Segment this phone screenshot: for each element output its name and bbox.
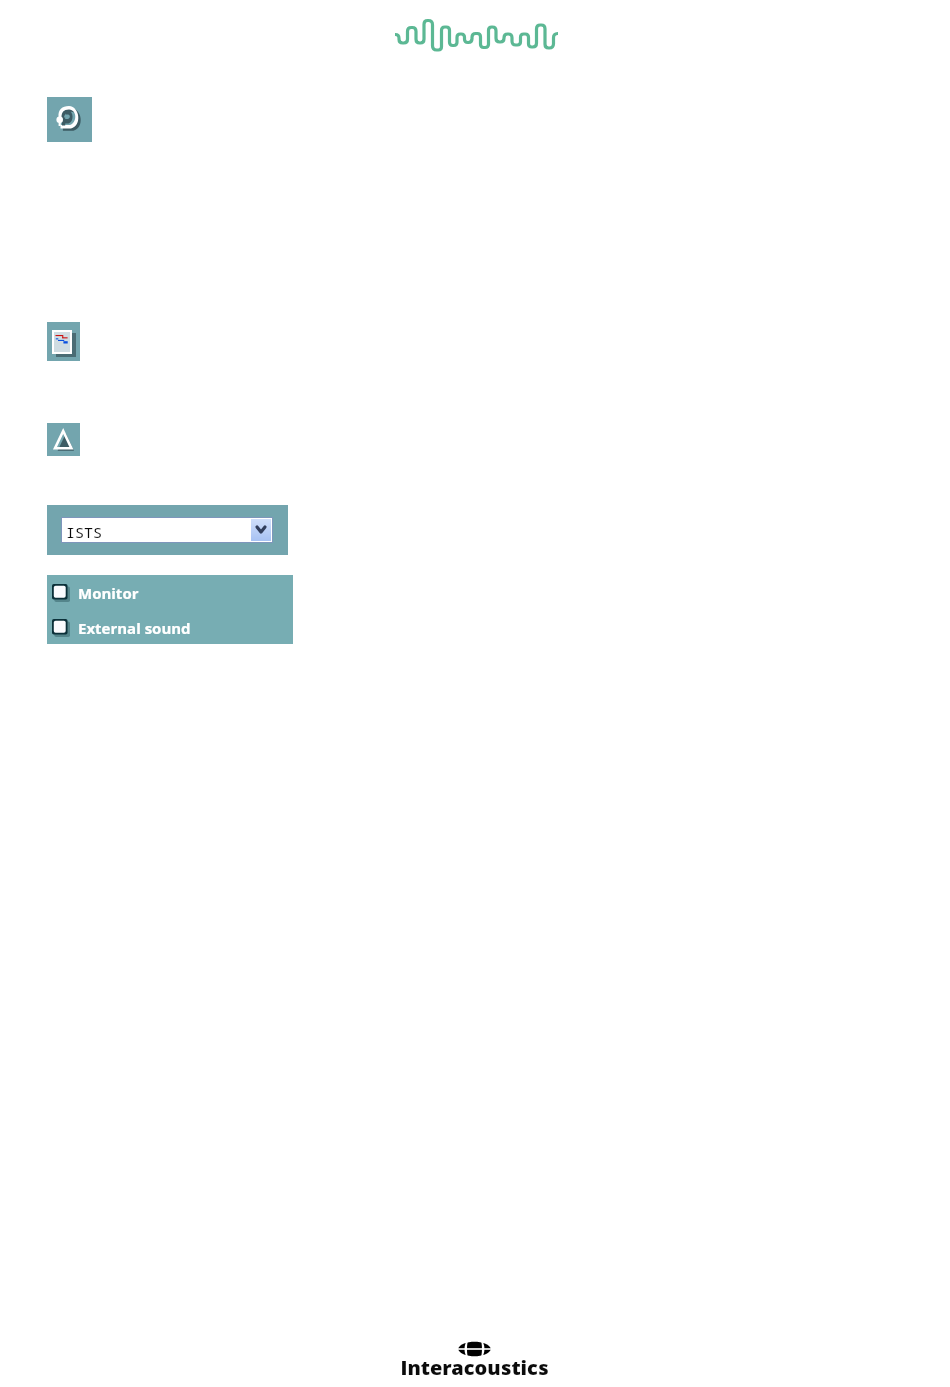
button[interactable]: Transducer — [47, 97, 92, 142]
button[interactable]: Stimulus: ISTS — [61, 517, 273, 543]
staticText: ISTS — [66, 522, 103, 542]
staticText: Interacoustics — [400, 1354, 549, 1381]
staticText: External sound — [78, 618, 191, 638]
button[interactable]: Delta — [47, 423, 80, 456]
button[interactable]: Monitor — [52, 582, 139, 604]
button[interactable]: External sound — [52, 617, 191, 639]
button[interactable]: Report — [47, 322, 80, 361]
staticText: Monitor — [78, 583, 139, 603]
